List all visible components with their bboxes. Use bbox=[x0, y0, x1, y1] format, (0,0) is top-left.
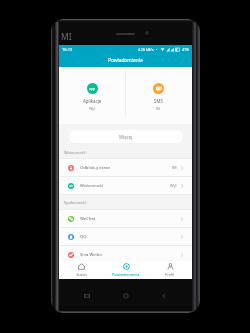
staticText: QQ bbox=[80, 234, 87, 240]
staticText: Odblokuj ekran bbox=[80, 165, 111, 171]
staticText: Profil bbox=[165, 272, 175, 277]
staticText: app bbox=[89, 86, 96, 91]
staticText: Widoczność bbox=[64, 150, 86, 155]
staticText: Aplikacje bbox=[83, 98, 102, 104]
staticText: Wł bbox=[156, 106, 161, 111]
button[interactable]: Powiadomienia bbox=[104, 261, 148, 279]
staticText: Widoczność bbox=[80, 183, 104, 189]
staticText: Powiadomienia bbox=[112, 272, 140, 277]
staticText: WeChat bbox=[80, 216, 96, 222]
staticText: MI bbox=[61, 31, 72, 43]
staticText: 4.26 kB/s bbox=[138, 47, 154, 52]
staticText: Społeczność bbox=[64, 200, 87, 205]
staticText: 41% bbox=[182, 47, 190, 52]
button[interactable]: Status bbox=[59, 261, 104, 279]
button[interactable]: Więcej bbox=[69, 130, 183, 143]
button[interactable]: Widoczność bbox=[59, 177, 192, 194]
button[interactable]: SMS bbox=[125, 67, 192, 124]
button[interactable]: WeChat bbox=[59, 210, 192, 227]
staticText: Sina Weibo bbox=[80, 252, 102, 258]
staticText: Status bbox=[76, 272, 88, 277]
button[interactable]: Odblokuj ekran bbox=[59, 159, 192, 176]
staticText: Wył bbox=[89, 106, 96, 111]
button[interactable]: QQ bbox=[59, 228, 192, 245]
staticText: Wył bbox=[170, 183, 177, 188]
staticText: 16:13 bbox=[62, 47, 73, 52]
button[interactable]: Profil bbox=[148, 261, 192, 279]
staticText: Więcej bbox=[119, 134, 133, 140]
button[interactable]: Sina Weibo bbox=[59, 246, 192, 263]
staticText: Powiadomienia bbox=[108, 57, 143, 64]
staticText: SMS bbox=[154, 98, 163, 104]
staticText: Wł bbox=[172, 165, 177, 170]
button[interactable]: app bbox=[59, 67, 125, 124]
